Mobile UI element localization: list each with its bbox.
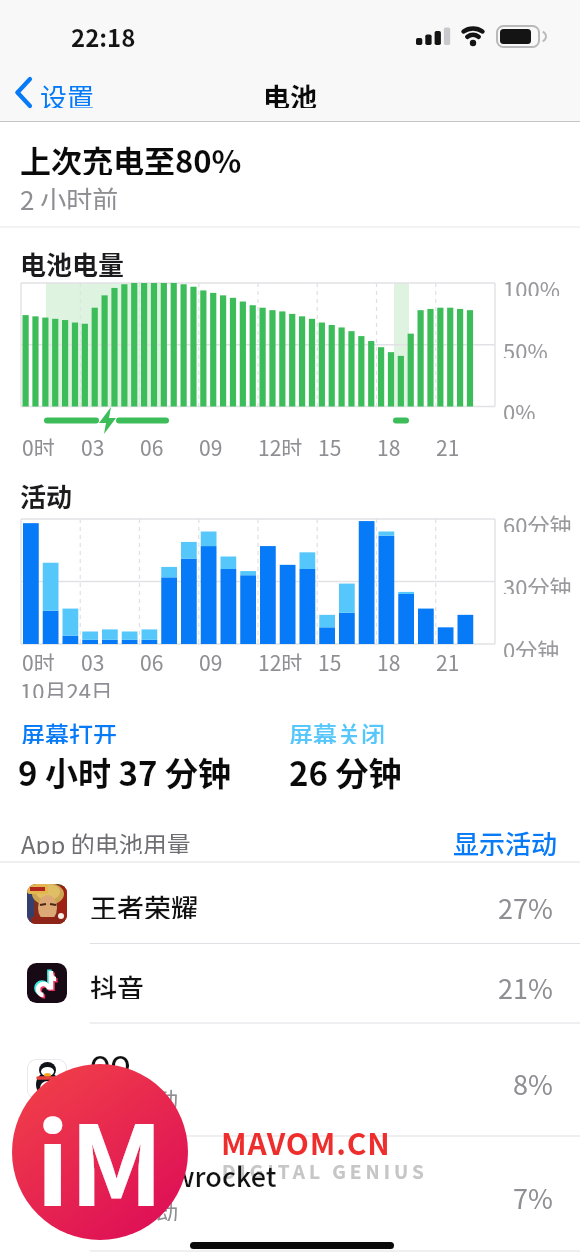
staticText: 03 bbox=[81, 647, 105, 671]
staticText: 12时 bbox=[258, 647, 303, 671]
staticText: App 的电池用量 bbox=[21, 826, 191, 854]
staticText: 王者荣耀 bbox=[90, 888, 198, 919]
staticText: 9 小时 37 分钟 bbox=[18, 748, 231, 790]
staticText: 电池 bbox=[263, 77, 317, 108]
staticText: 50% bbox=[503, 334, 548, 358]
staticText: 后台活动 bbox=[90, 1195, 179, 1221]
button[interactable]: 设置 bbox=[40, 77, 110, 108]
staticText: DIGITAL GENIUS bbox=[222, 1157, 428, 1185]
staticText: 7% bbox=[513, 1178, 553, 1209]
button[interactable] bbox=[0, 1023, 580, 1136]
staticText: 抖音 bbox=[90, 968, 144, 999]
staticText: 22:18 bbox=[71, 19, 136, 47]
staticText: 18 bbox=[377, 432, 401, 456]
staticText: 活动 bbox=[20, 477, 73, 509]
staticText: 100% bbox=[503, 272, 560, 296]
button[interactable]: 显示活动 bbox=[420, 824, 558, 856]
staticText: 26 分钟 bbox=[289, 748, 402, 790]
button[interactable] bbox=[0, 944, 580, 1023]
staticText: 21 bbox=[436, 432, 460, 456]
staticText: 15 bbox=[318, 647, 342, 671]
staticText: 18 bbox=[377, 647, 401, 671]
staticText: 上次充电至80% bbox=[20, 137, 242, 175]
staticText: 15 bbox=[318, 432, 342, 456]
staticText: QQ bbox=[90, 1045, 131, 1076]
button[interactable] bbox=[0, 1136, 580, 1249]
staticText: MAVOM.CN bbox=[221, 1120, 391, 1156]
staticText: 0分钟 bbox=[503, 633, 560, 657]
staticText: 10月24日 bbox=[20, 674, 113, 698]
staticText: 03 bbox=[81, 432, 105, 456]
staticText: iM bbox=[36, 1078, 164, 1223]
staticText: 设置 bbox=[40, 77, 94, 108]
staticText: 30分钟 bbox=[503, 570, 572, 594]
staticText: 电池电量 bbox=[20, 245, 125, 277]
staticText: 06 bbox=[140, 432, 164, 456]
staticText: 0时 bbox=[22, 647, 55, 671]
staticText: 09 bbox=[199, 432, 223, 456]
staticText: 2 小时前 bbox=[20, 180, 119, 210]
staticText: 21 bbox=[436, 647, 460, 671]
staticText: 屏幕关闭 bbox=[289, 716, 385, 744]
button[interactable] bbox=[0, 864, 580, 943]
staticText: 27% bbox=[498, 888, 553, 919]
staticText: 12时 bbox=[258, 432, 303, 456]
staticText: 21% bbox=[498, 968, 553, 999]
staticText: 屏幕打开 bbox=[21, 716, 117, 744]
staticText: 09 bbox=[199, 647, 223, 671]
staticText: Shadowrocket bbox=[90, 1156, 277, 1187]
staticText: 06 bbox=[140, 647, 164, 671]
staticText: 0时 bbox=[22, 432, 55, 456]
staticText: 0% bbox=[503, 395, 536, 419]
staticText: 显示活动 bbox=[453, 824, 558, 856]
staticText: 后台活动 bbox=[90, 1082, 179, 1108]
staticText: 8% bbox=[513, 1064, 553, 1095]
staticText: 60分钟 bbox=[503, 508, 572, 532]
